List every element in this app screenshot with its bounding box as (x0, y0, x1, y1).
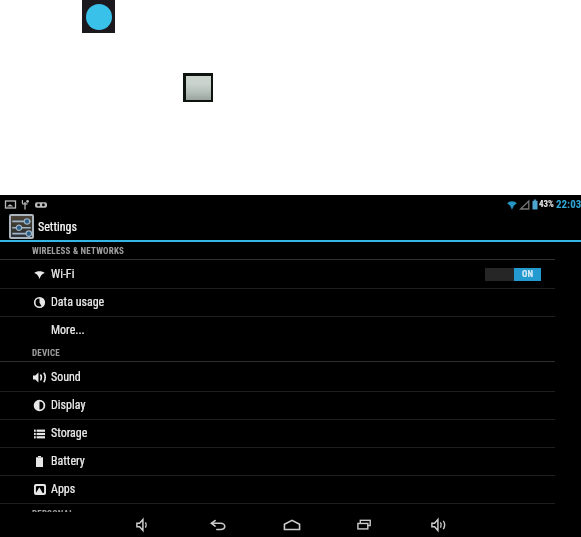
button[interactable]: Data usage (0, 288, 581, 316)
staticText: ON (522, 269, 533, 280)
staticText: 22:03 (556, 198, 581, 211)
staticText: Sound (51, 370, 81, 384)
staticText: Settings (38, 220, 77, 234)
button[interactable]: Display (0, 391, 581, 419)
staticText: DEVICE (32, 348, 60, 359)
staticText: Battery (51, 454, 85, 468)
staticText: More... (51, 323, 85, 337)
staticText: PERSONAL (32, 509, 74, 520)
button[interactable]: Storage (0, 419, 581, 447)
button[interactable]: More... (0, 316, 581, 344)
button[interactable]: Volume up (426, 512, 451, 537)
staticText: WIRELESS & NETWORKS (32, 246, 125, 257)
button[interactable]: Wi-Fi (0, 260, 581, 288)
button[interactable]: Back (206, 512, 231, 537)
staticText: Apps (51, 482, 76, 496)
button[interactable]: ON (485, 268, 541, 281)
button[interactable]: Recent apps (352, 512, 377, 537)
button[interactable]: Settings (0, 213, 581, 240)
button[interactable]: Apps (0, 475, 581, 503)
staticText: 43% (539, 199, 554, 210)
button[interactable]: Volume down (131, 512, 156, 537)
button[interactable]: Battery (0, 447, 581, 475)
staticText: Display (51, 398, 86, 412)
button[interactable]: Home (279, 512, 304, 537)
staticText: Storage (51, 426, 88, 440)
button[interactable]: Sound (0, 363, 581, 391)
staticText: Wi-Fi (51, 267, 75, 281)
staticText: Data usage (51, 295, 105, 309)
